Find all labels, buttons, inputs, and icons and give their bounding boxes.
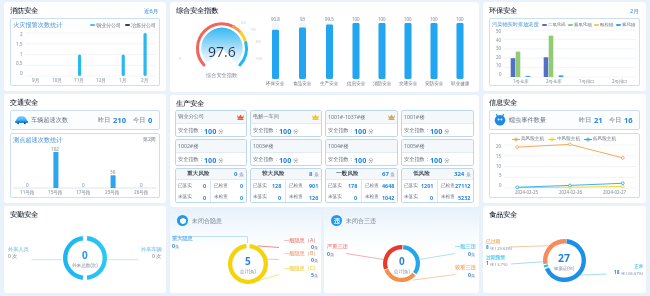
button[interactable]: 1005#楼 xyxy=(401,139,474,166)
staticText: 100 xyxy=(204,155,217,165)
button[interactable]: 重大风险 xyxy=(175,168,247,203)
staticText: 99.5 xyxy=(325,16,334,22)
staticText: 11月 xyxy=(74,77,84,83)
staticText: 高风险主机 xyxy=(521,136,544,142)
staticText: 100 xyxy=(255,56,263,62)
staticText: 条 xyxy=(175,244,180,249)
staticText: 条 xyxy=(314,273,319,278)
staticText: 100 xyxy=(279,126,292,136)
button[interactable]: 1001#-1037#楼 xyxy=(325,110,398,137)
staticText: 0 xyxy=(179,56,182,62)
staticText: 已检查 xyxy=(214,183,228,189)
staticText: 100 xyxy=(354,126,367,136)
staticText: 1.5 xyxy=(16,41,23,47)
staticText: 8 xyxy=(309,170,313,178)
staticText: 已落实 xyxy=(253,183,267,189)
staticText: 食品安全 xyxy=(489,210,517,219)
staticText: 0 次 xyxy=(152,253,162,260)
staticText: 近6月 xyxy=(144,7,159,15)
button[interactable]: 生产安全 xyxy=(170,95,479,207)
staticText: 0 xyxy=(327,250,330,257)
staticText: 冶炼分公司 xyxy=(131,22,156,28)
staticText: 安全指数： xyxy=(253,156,279,163)
staticText: 80 xyxy=(256,39,261,45)
staticText: 未落实 xyxy=(328,194,342,200)
staticText: 36 xyxy=(110,169,116,175)
staticText: 污染物实时排放浓度 xyxy=(492,21,539,28)
staticText: 分 xyxy=(292,127,299,134)
staticText: 交通安全 xyxy=(10,98,38,107)
button[interactable]: 1002#楼 xyxy=(175,139,247,166)
staticText: 9月 xyxy=(32,77,40,83)
staticText: 较大风险 xyxy=(262,170,285,177)
button[interactable]: 违 xyxy=(324,210,479,293)
staticText: 0 xyxy=(499,182,502,188)
staticText: 15 xyxy=(496,153,502,159)
staticText: 生产安全 xyxy=(176,99,204,108)
button[interactable]: 消防安全 xyxy=(4,2,166,91)
other: 车辆 xyxy=(15,116,28,124)
staticText: 97.6 xyxy=(208,42,236,61)
button[interactable]: 环保安全 xyxy=(483,2,646,91)
button[interactable]: 车辆 xyxy=(10,110,160,130)
staticText: 分 xyxy=(367,156,374,163)
staticText: 正常 xyxy=(634,263,644,269)
button[interactable]: 综合安全指数 xyxy=(170,2,479,92)
button[interactable]: 1001#楼 xyxy=(401,110,474,137)
button[interactable]: 较大风险 xyxy=(250,168,322,203)
staticText: 18 xyxy=(614,269,620,276)
staticText: 100 xyxy=(279,155,292,165)
staticText: 0 xyxy=(468,271,471,278)
button[interactable]: 铜业分公司 xyxy=(175,110,247,137)
staticText: 条 xyxy=(389,171,395,177)
staticText: 条 xyxy=(471,273,476,278)
button[interactable]: 一般风险 xyxy=(325,168,398,203)
staticText: 一般三违 xyxy=(455,243,476,250)
staticText: 条 xyxy=(313,171,319,177)
staticText: 昨日 xyxy=(579,116,592,124)
button[interactable]: 未闭合隐患 xyxy=(170,210,321,293)
staticText: 条 xyxy=(238,171,244,177)
staticText: 0 xyxy=(399,254,405,268)
button[interactable]: 食品安全 xyxy=(483,206,646,293)
staticText: 综合安全指数 xyxy=(206,72,238,79)
staticText: 10月 xyxy=(52,77,62,83)
staticText: 1003#楼 xyxy=(253,142,274,149)
staticText: 安全指数： xyxy=(404,156,430,163)
button[interactable]: 安勤安全 xyxy=(4,206,166,293)
staticText: 100 xyxy=(456,16,464,22)
staticText: 安全指数： xyxy=(178,156,204,163)
staticText: 今日 xyxy=(609,116,622,124)
button[interactable]: 电解一车间 xyxy=(250,110,322,137)
staticText: 2月 xyxy=(630,7,639,15)
staticText: 重大隐患 xyxy=(172,235,193,242)
staticText: 重大风险 xyxy=(187,170,210,177)
staticText: 0 xyxy=(82,248,88,262)
staticText: 2024-02-26 xyxy=(559,189,582,195)
staticText: 0 xyxy=(20,70,23,76)
staticText: 已落实 xyxy=(328,183,342,189)
button[interactable]: 低风险 xyxy=(401,168,474,203)
staticText: 未检查 xyxy=(365,194,379,200)
staticText: 蠕虫事件数量 xyxy=(509,116,547,124)
button[interactable]: 蠕虫事件 xyxy=(489,110,640,130)
staticText: 总计(条) xyxy=(394,268,410,274)
staticText: 0 xyxy=(203,182,207,189)
staticText: 未检查 xyxy=(214,194,228,200)
staticText: 12月 xyxy=(96,77,106,83)
button[interactable]: 1004#楼 xyxy=(325,139,398,166)
button[interactable]: 信息安全 xyxy=(483,94,646,203)
staticText: 职业健康 xyxy=(451,81,470,87)
staticText: 70 xyxy=(251,27,256,33)
staticText: 0 次 xyxy=(8,253,18,260)
staticText: 25号路 xyxy=(105,189,120,195)
staticText: 条 xyxy=(465,171,471,177)
button[interactable]: 1003#楼 xyxy=(250,139,322,166)
staticText: 外来总数(次) xyxy=(72,262,98,268)
staticText: 100 xyxy=(378,16,386,22)
staticText: 178 xyxy=(348,182,358,189)
staticText: 1月 xyxy=(119,77,127,83)
staticText: 324 xyxy=(454,170,465,178)
button[interactable]: 交通安全 xyxy=(4,94,166,203)
staticText: 未落实 xyxy=(178,194,192,200)
